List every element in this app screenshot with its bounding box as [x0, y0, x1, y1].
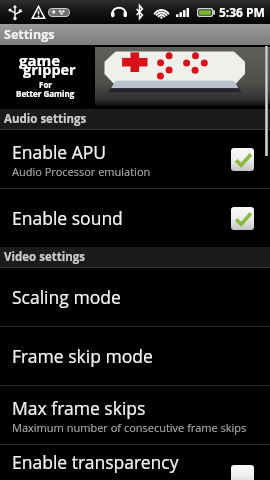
staticText: For: [39, 79, 52, 90]
staticText: Better Gaming: [16, 88, 75, 99]
staticText: 5:36 PM: [219, 4, 265, 20]
staticText: Enable sound: [12, 206, 123, 230]
staticText: Enable transparency: [12, 450, 179, 474]
staticText: Max frame skips: [12, 396, 146, 420]
button[interactable]: Enabled: [231, 148, 254, 171]
button[interactable]: Max frame skips: [0, 386, 270, 444]
button[interactable]: Enable transparency: [0, 445, 270, 480]
button[interactable]: Enable transparency: [231, 465, 254, 480]
button[interactable]: Enabled: [231, 207, 254, 230]
button[interactable]: Enable APU: [0, 130, 270, 188]
button[interactable]: Frame skip mode: [0, 327, 270, 385]
staticText: Maximum number of consecutive frame skip…: [12, 420, 247, 435]
staticText: Audio Processor emulation: [12, 164, 151, 179]
button[interactable]: Enable sound: [0, 189, 270, 247]
staticText: Settings: [4, 26, 55, 43]
button[interactable]: Scaling mode: [0, 268, 270, 326]
staticText: Enable APU: [12, 140, 107, 164]
staticText: Audio settings: [4, 111, 87, 127]
staticText: Video settings: [4, 249, 85, 265]
staticText: Scaling mode: [12, 285, 121, 309]
staticText: game: [19, 50, 61, 70]
staticText: Frame skip mode: [12, 344, 153, 368]
staticText: gripper: [23, 60, 76, 80]
